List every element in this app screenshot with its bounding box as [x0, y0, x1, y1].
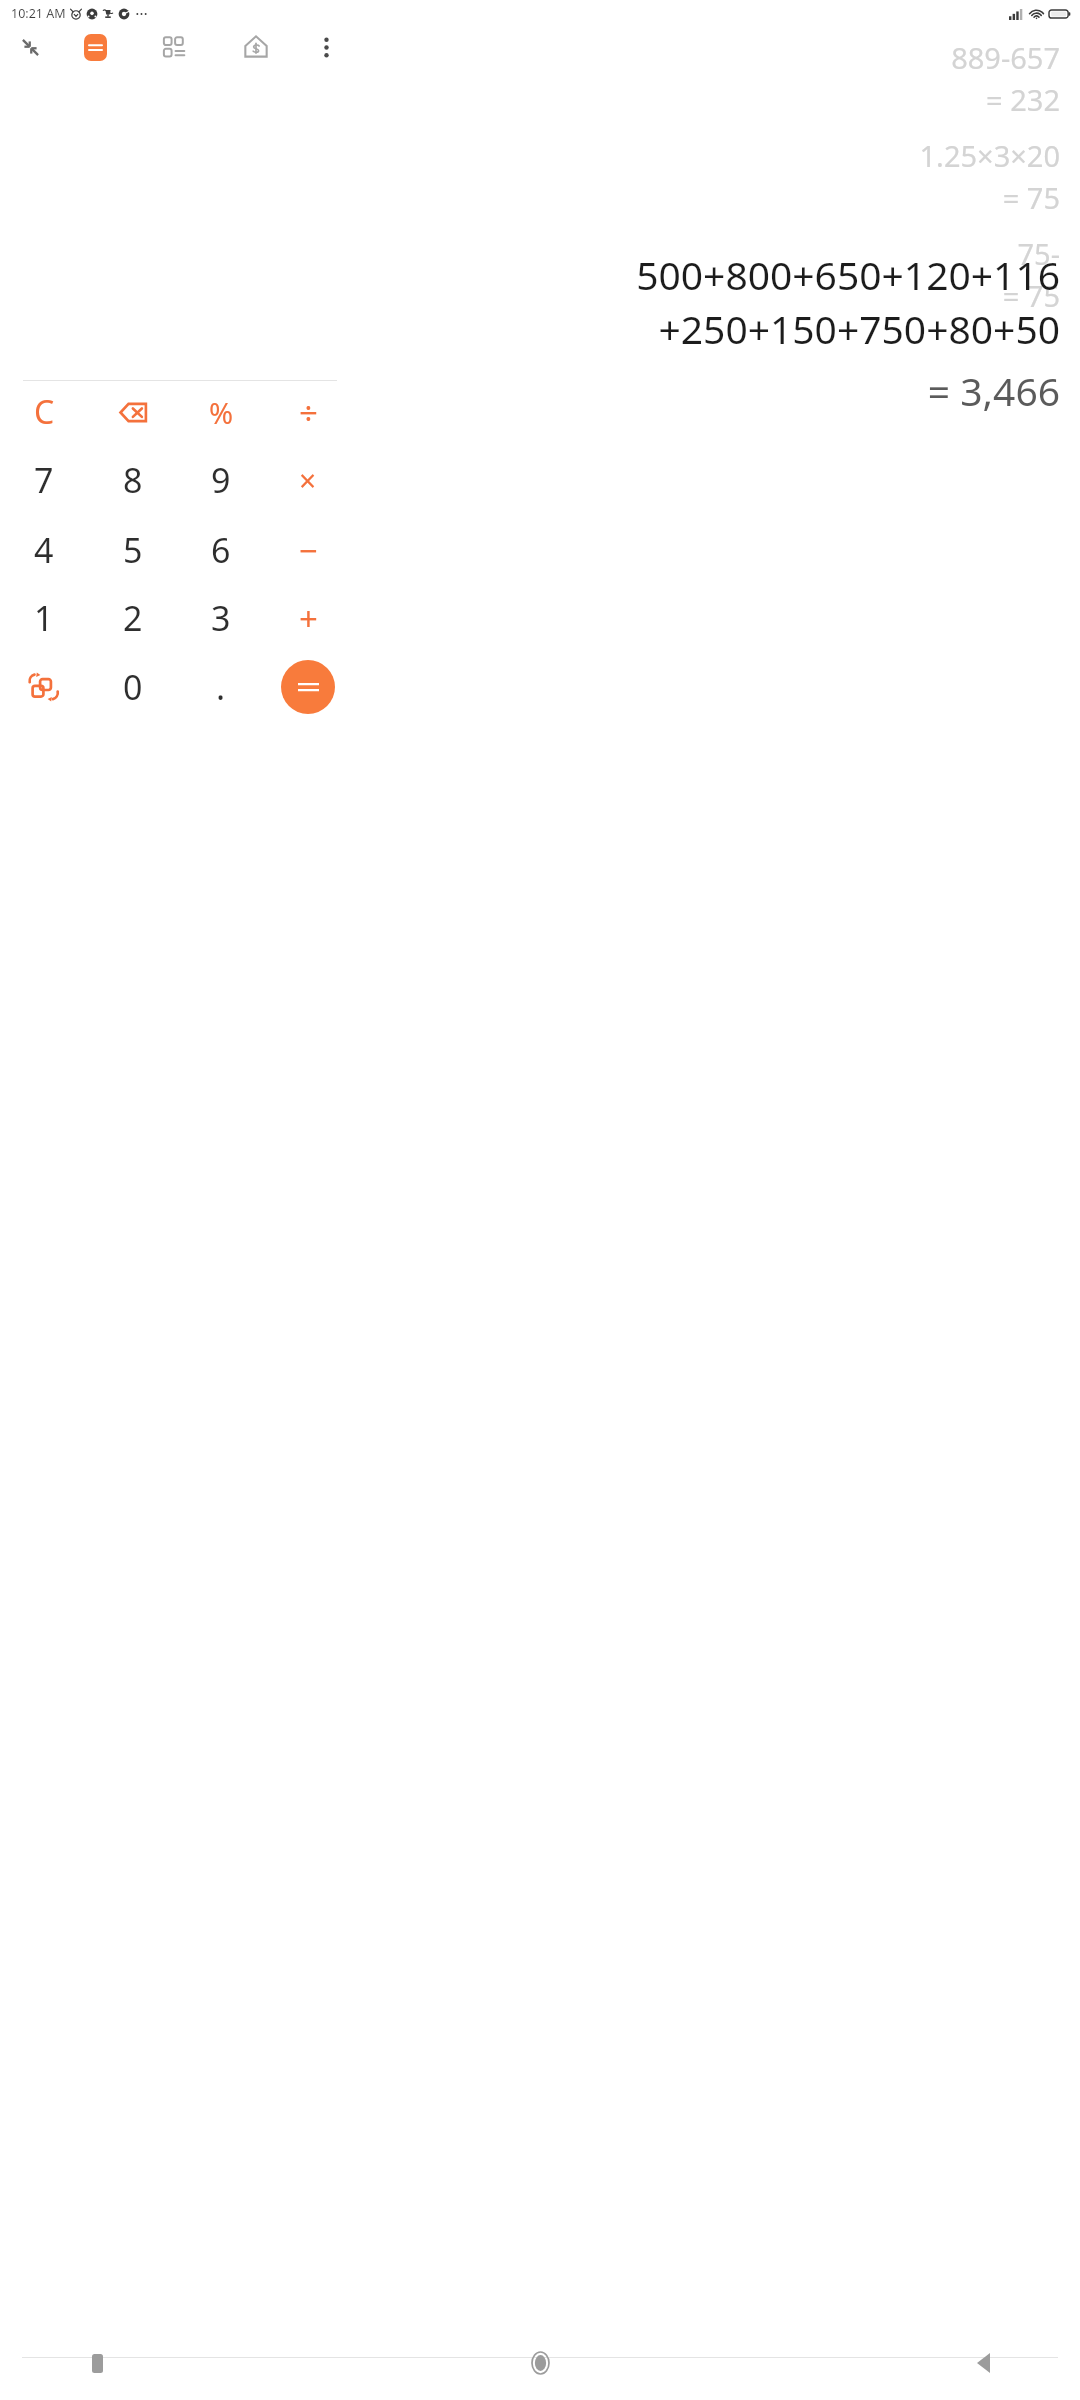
button[interactable]: 7	[0, 446, 88, 514]
button[interactable]: −	[264, 516, 352, 584]
button[interactable]: Backspace	[89, 378, 177, 446]
staticText: C	[34, 390, 55, 434]
staticText: %	[209, 393, 234, 432]
button[interactable]: 8	[89, 446, 177, 514]
button[interactable]: 6	[177, 516, 265, 584]
staticText: = 75	[1002, 276, 1060, 315]
staticText: 889-657	[951, 38, 1060, 77]
staticText: 1.25×3×20	[919, 136, 1060, 175]
button[interactable]: ÷	[264, 378, 352, 446]
staticText: 8	[123, 457, 143, 503]
button[interactable]: Home	[517, 2340, 563, 2386]
button[interactable]: 3	[177, 584, 265, 652]
button[interactable]: 1	[0, 584, 88, 652]
button[interactable]: 0	[89, 653, 177, 721]
button[interactable]: %	[177, 378, 265, 446]
staticText: 10:21 AM	[11, 5, 66, 22]
button[interactable]: Loan calculator	[232, 30, 280, 64]
staticText: 6	[211, 527, 231, 573]
staticText: ×	[299, 460, 317, 501]
button[interactable]: 500+800+650+120+116	[20, 248, 1060, 417]
button[interactable]: Recent apps	[74, 2340, 120, 2386]
button[interactable]: Collapse	[6, 30, 54, 64]
staticText: = 232	[986, 80, 1060, 119]
staticText: 7	[34, 457, 54, 503]
staticText: = 75	[1002, 178, 1060, 217]
staticText: 5	[123, 527, 143, 573]
button[interactable]: 889-657	[0, 38, 1060, 315]
staticText: −	[299, 528, 318, 573]
button[interactable]: C	[0, 378, 88, 446]
button[interactable]: 9	[177, 446, 265, 514]
button[interactable]: Back	[960, 2340, 1006, 2386]
button[interactable]: 5	[89, 516, 177, 584]
staticText: 2	[123, 595, 143, 641]
button[interactable]: 4	[0, 516, 88, 584]
button[interactable]: .	[177, 653, 265, 721]
button[interactable]: +	[264, 584, 352, 652]
staticText: 3	[211, 595, 231, 641]
staticText: +	[299, 596, 318, 641]
button[interactable]: History	[150, 30, 198, 64]
staticText: 75-	[1017, 234, 1060, 273]
staticText: 9	[211, 457, 231, 503]
staticText: = 3,466	[927, 364, 1060, 417]
button[interactable]: Calculator	[71, 30, 119, 64]
staticText: 0	[123, 664, 143, 710]
staticText: ÷	[299, 390, 318, 435]
staticText: 1	[34, 595, 54, 641]
button[interactable]: ×	[264, 446, 352, 514]
button[interactable]: More options	[302, 30, 350, 64]
staticText: 4	[34, 527, 54, 573]
staticText: 500+800+650+120+116	[636, 248, 1060, 301]
button[interactable]: Unit converter	[0, 653, 88, 721]
button[interactable]: 2	[89, 584, 177, 652]
button[interactable]: Equals	[254, 633, 362, 741]
staticText: .	[216, 664, 226, 710]
staticText: +250+150+750+80+50	[658, 302, 1060, 355]
